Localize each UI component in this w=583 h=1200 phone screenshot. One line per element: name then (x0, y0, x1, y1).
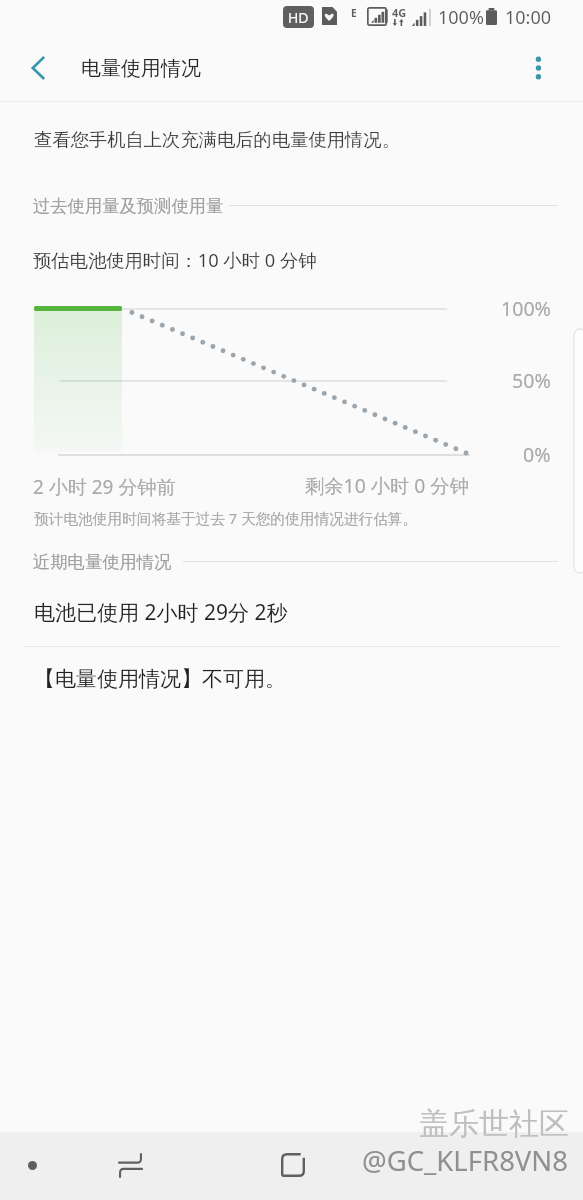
staticText: 【电量使用情况】不可用。 (34, 666, 286, 692)
button[interactable]: Back (12, 42, 64, 94)
staticText: 10:00 (505, 5, 552, 30)
button[interactable]: Recent apps (102, 1137, 158, 1193)
staticText: 电池已使用 2小时 29分 2秒 (34, 598, 288, 627)
button[interactable]: 电池已使用 2小时 29分 2秒 (0, 578, 583, 644)
staticText: 4G (392, 5, 407, 20)
staticText: 电量使用情况 (81, 56, 201, 81)
staticText: 盖乐世社区 (419, 1105, 569, 1143)
button[interactable]: Back (265, 1137, 321, 1193)
staticText: 0% (523, 441, 551, 468)
staticText: 50% (512, 367, 551, 394)
staticText: 预估电池使用时间：10 小时 0 分钟 (33, 247, 317, 272)
staticText: 100% (438, 5, 484, 30)
staticText: E (351, 6, 357, 20)
staticText: 2 小时 29 分钟前 (33, 474, 176, 500)
button[interactable]: 【电量使用情况】不可用。 (0, 645, 583, 711)
staticText: 查看您手机自上次充满电后的电量使用情况。 (34, 128, 400, 151)
staticText: 过去使用量及预测使用量 (33, 195, 224, 217)
button[interactable]: More options (512, 42, 564, 94)
staticText: 100% (501, 295, 551, 322)
staticText: 近期电量使用情况 (33, 551, 172, 573)
staticText: HD (288, 8, 309, 27)
button[interactable]: Menu (4, 1137, 60, 1193)
staticText: 预计电池使用时间将基于过去 7 天您的使用情况进行估算。 (34, 508, 418, 528)
staticText: @GC_KLFR8VN8 (362, 1142, 569, 1179)
staticText: 剩余10 小时 0 分钟 (305, 472, 469, 498)
